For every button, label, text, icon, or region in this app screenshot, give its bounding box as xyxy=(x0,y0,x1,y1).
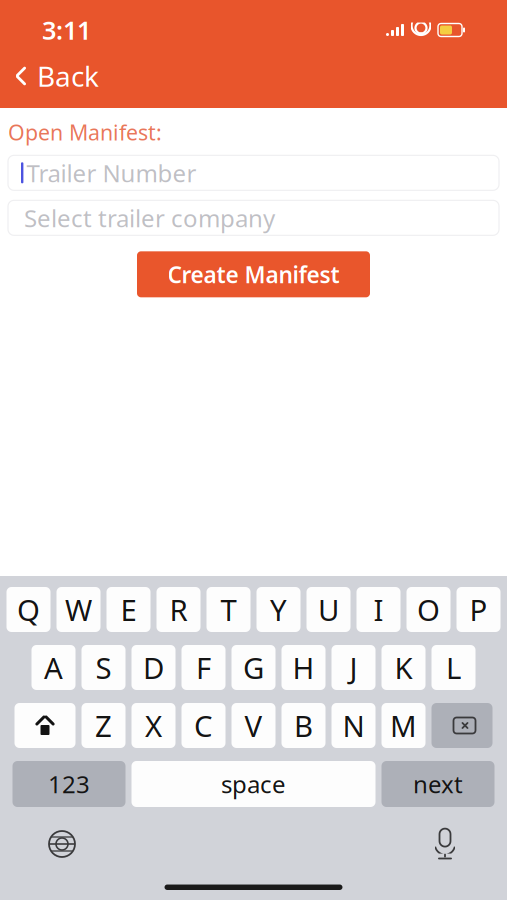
staticText: M xyxy=(390,706,417,745)
button[interactable]: T xyxy=(206,587,250,632)
staticText: Select trailer company xyxy=(24,202,275,234)
button[interactable]: Dictation xyxy=(422,824,468,864)
button[interactable]: N xyxy=(331,703,375,748)
staticText: O xyxy=(417,590,440,629)
button[interactable]: R xyxy=(156,587,200,632)
button[interactable]: O xyxy=(406,587,450,632)
staticText: S xyxy=(95,648,111,687)
staticText: D xyxy=(143,648,164,687)
button[interactable]: M xyxy=(381,703,425,748)
button[interactable]: J xyxy=(331,645,375,690)
button[interactable]: U xyxy=(306,587,350,632)
staticText: F xyxy=(196,648,211,687)
button[interactable]: 123 xyxy=(12,761,125,807)
button[interactable]: H xyxy=(281,645,325,690)
button[interactable]: Q xyxy=(6,587,50,632)
button[interactable]: F xyxy=(181,645,225,690)
button[interactable]: E xyxy=(106,587,150,632)
staticText: next xyxy=(413,768,463,800)
staticText: I xyxy=(373,590,383,629)
staticText: Q xyxy=(17,590,40,629)
button[interactable]: Trailer Number xyxy=(8,155,499,190)
button[interactable]: P xyxy=(456,587,500,632)
button[interactable]: Back xyxy=(0,52,111,100)
staticText: H xyxy=(292,648,314,687)
button[interactable]: K xyxy=(381,645,425,690)
staticText: R xyxy=(169,590,187,629)
button[interactable]: V xyxy=(231,703,275,748)
staticText: V xyxy=(244,706,262,745)
staticText: E xyxy=(120,590,136,629)
button[interactable]: W xyxy=(56,587,100,632)
button[interactable]: L xyxy=(431,645,475,690)
staticText: 3:11 xyxy=(42,13,91,47)
staticText: K xyxy=(394,648,412,687)
button[interactable]: Select trailer company xyxy=(8,200,499,235)
button[interactable]: Next keyboard xyxy=(39,824,85,864)
staticText: Z xyxy=(95,706,112,745)
staticText: Y xyxy=(270,590,287,629)
button[interactable]: X xyxy=(131,703,175,748)
staticText: W xyxy=(65,590,92,629)
staticText: A xyxy=(44,648,63,687)
button[interactable]: I xyxy=(356,587,400,632)
button[interactable]: space xyxy=(131,761,375,807)
staticText: X xyxy=(145,706,162,745)
staticText: L xyxy=(446,648,461,687)
button[interactable]: next xyxy=(381,761,494,807)
staticText: Back xyxy=(37,57,99,95)
staticText: G xyxy=(243,648,264,687)
staticText: P xyxy=(469,590,487,629)
staticText: T xyxy=(220,590,236,629)
staticText: Create Manifest xyxy=(167,259,339,289)
button[interactable]: C xyxy=(181,703,225,748)
staticText: Trailer Number xyxy=(26,157,196,189)
button[interactable]: D xyxy=(131,645,175,690)
button[interactable]: B xyxy=(281,703,325,748)
staticText: J xyxy=(349,648,357,687)
button[interactable]: Shift xyxy=(14,703,75,748)
button[interactable]: G xyxy=(231,645,275,690)
staticText: C xyxy=(194,706,213,745)
staticText: space xyxy=(221,768,286,800)
button[interactable]: Z xyxy=(81,703,125,748)
button[interactable]: Y xyxy=(256,587,300,632)
button[interactable]: Create Manifest xyxy=(137,251,370,297)
staticText: Open Manifest: xyxy=(8,118,162,146)
staticText: B xyxy=(294,706,313,745)
staticText: N xyxy=(342,706,364,745)
button[interactable]: A xyxy=(31,645,75,690)
button[interactable]: S xyxy=(81,645,125,690)
staticText: 123 xyxy=(48,768,90,800)
button[interactable]: Delete xyxy=(431,703,492,748)
staticText: U xyxy=(318,590,339,629)
